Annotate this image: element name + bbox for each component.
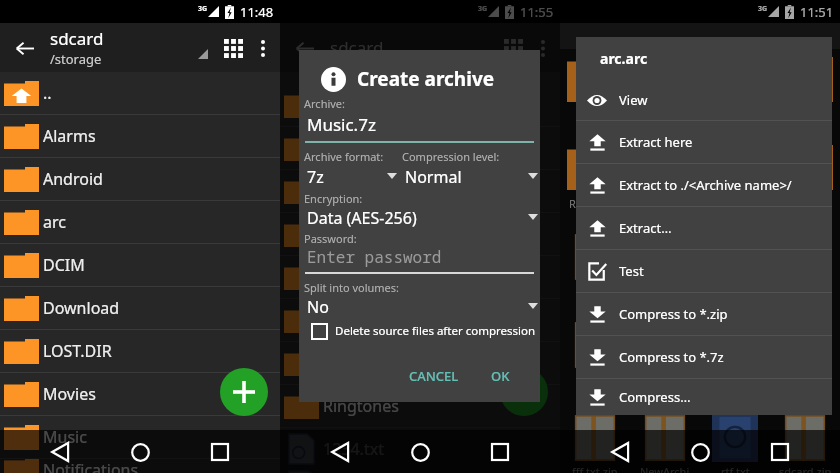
button[interactable]: Navigate up	[6, 29, 44, 67]
button[interactable]: Recents	[200, 432, 240, 472]
button[interactable]: Normal	[405, 166, 536, 186]
button[interactable]: Music	[0, 416, 280, 458]
button[interactable]: Back	[320, 432, 360, 472]
button[interactable]: Movies	[0, 373, 280, 415]
button[interactable]: Alarms	[0, 115, 280, 157]
staticText: LOST.DIR	[781, 196, 829, 211]
staticText: ..	[43, 82, 52, 104]
button[interactable]: Home	[120, 432, 160, 472]
staticText: x.zip	[723, 371, 747, 386]
staticText: DCIM	[43, 254, 85, 276]
button[interactable]: View	[576, 79, 832, 120]
staticText: Movies	[717, 196, 754, 211]
button[interactable]: Extract to ./<Archive name>/	[576, 164, 832, 206]
button[interactable]: More options	[250, 35, 276, 61]
button[interactable]: Home	[400, 432, 440, 472]
button[interactable]: Download	[0, 287, 280, 329]
staticText: Android	[644, 108, 686, 123]
button[interactable]: Back	[40, 432, 80, 472]
button[interactable]: arc	[0, 201, 280, 243]
staticText: 11:48	[240, 3, 274, 21]
button[interactable]: Compress to *.zip	[576, 293, 832, 335]
staticText: Split into volumes:	[304, 280, 400, 295]
staticText: Archive format:	[304, 149, 384, 164]
button[interactable]: Extract here	[576, 121, 832, 163]
button[interactable]: Grid view	[496, 31, 530, 65]
button[interactable]: Compress to *.7z	[576, 336, 832, 378]
staticText: OK	[491, 367, 510, 385]
staticText: bbb.zip	[646, 283, 685, 298]
staticText: sdcard.zip	[779, 464, 832, 473]
button[interactable]: More options	[530, 35, 556, 61]
button[interactable]: 7z	[307, 166, 403, 186]
staticText: DCIM	[323, 223, 365, 245]
staticText: Normal	[405, 166, 462, 186]
staticText: Enter password	[307, 246, 442, 268]
staticText: 11:51	[800, 3, 834, 21]
staticText: Compress…	[619, 388, 691, 406]
staticText: Data (AES-256)	[307, 207, 417, 227]
staticText: Notifications	[43, 459, 139, 473]
button[interactable]: Recents	[760, 432, 800, 472]
button[interactable]: Grid view	[216, 31, 250, 65]
staticText: Archive:	[304, 96, 346, 111]
staticText: 7z	[307, 166, 324, 186]
staticText: Ringtones	[569, 196, 622, 211]
staticText: Movies	[43, 383, 96, 405]
button[interactable]: Recents	[480, 432, 520, 472]
staticText: 1234.txt	[323, 438, 384, 460]
staticText: y.zip	[794, 371, 817, 386]
button[interactable]: ..	[0, 72, 280, 114]
staticText: Extract…	[619, 219, 672, 237]
button[interactable]: DCIM	[0, 244, 280, 286]
staticText: Alarms	[43, 125, 96, 147]
staticText: arc	[727, 108, 743, 123]
staticText: No	[307, 296, 329, 316]
button[interactable]: Back	[600, 432, 640, 472]
button[interactable]: Extract…	[576, 207, 832, 249]
staticText: Test	[619, 262, 644, 280]
staticText: View	[619, 91, 648, 109]
staticText: Ringtones	[323, 395, 399, 417]
staticText: Delete source files after compression	[335, 323, 536, 339]
staticText: rtf.txt	[721, 464, 750, 473]
button[interactable]: LOST.DIR	[0, 330, 280, 372]
button[interactable]: Navigate up	[286, 29, 324, 67]
staticText: Password:	[304, 231, 357, 246]
staticText: Create archive	[357, 66, 495, 92]
staticText: Extract here	[619, 133, 693, 151]
staticText: ccc.zip	[718, 283, 752, 298]
button[interactable]: Android	[0, 158, 280, 200]
staticText: Extract to ./<Archive name>/	[619, 176, 792, 194]
button[interactable]: No	[307, 296, 536, 316]
staticText: Music.7z	[307, 113, 376, 136]
staticText: arc	[323, 180, 346, 202]
staticText: arc	[43, 211, 66, 233]
staticText: Music	[43, 426, 87, 448]
staticText: LOST.DIR	[43, 340, 112, 362]
staticText: aaa.zip	[577, 283, 614, 298]
staticText: Android	[43, 168, 103, 190]
staticText: eee.zip	[647, 371, 684, 386]
staticText: Download	[323, 266, 400, 288]
staticText: bbb.7z	[578, 371, 613, 386]
staticText: 3G	[478, 4, 488, 14]
staticText: /storage	[50, 50, 102, 68]
button[interactable]: Delete source files after compression	[307, 320, 542, 342]
button[interactable]: Compress…	[576, 379, 832, 415]
button[interactable]: Home	[680, 432, 720, 472]
staticText: ddd.zip	[786, 283, 825, 298]
staticText: NewArchi	[640, 464, 690, 473]
button[interactable]: CANCEL	[397, 358, 471, 394]
button[interactable]: Notifications	[0, 459, 280, 473]
button[interactable]: Test	[576, 250, 832, 292]
button[interactable]: OK	[479, 358, 522, 394]
button[interactable]: Add	[220, 368, 268, 416]
staticText: sdcard	[50, 27, 104, 50]
staticText: Encryption:	[304, 191, 363, 206]
button[interactable]: Data (AES-256)	[307, 207, 536, 227]
staticText: 11:55	[520, 3, 554, 21]
staticText: Compress to *.7z	[619, 348, 724, 366]
staticText: CANCEL	[409, 367, 459, 385]
